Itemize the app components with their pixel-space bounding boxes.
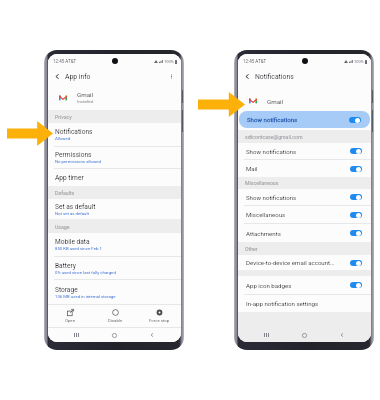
staticText: Mobile data: [55, 238, 90, 246]
staticText: Permissions: [55, 151, 92, 159]
staticText: 100%: [164, 59, 174, 64]
staticText: App info: [65, 73, 91, 81]
staticText: Storage: [55, 286, 78, 294]
button[interactable]: Back: [323, 328, 361, 342]
button[interactable]: App timer: [48, 169, 181, 186]
button[interactable]: In-app notification settings: [238, 295, 371, 312]
staticText: Other: [245, 246, 258, 252]
button[interactable]: Home: [285, 328, 323, 342]
staticText: Device-to-device email account…: [246, 259, 335, 266]
staticText: Allowed: [55, 136, 71, 141]
button[interactable]: Back: [133, 328, 171, 342]
button[interactable]: Show notifications: [238, 143, 371, 159]
button[interactable]: Show notifications: [239, 111, 370, 128]
button[interactable]: Back: [52, 72, 61, 81]
staticText: 12:45 AT&T: [243, 59, 267, 64]
staticText: 0% used since last fully charged: [55, 270, 116, 275]
staticText: 850 KB used since Feb 1: [55, 246, 102, 251]
button[interactable]: Storage: [48, 280, 181, 304]
staticText: sdtcontcase@gmail.com: [245, 134, 303, 140]
staticText: Privacy: [55, 114, 72, 120]
staticText: Force stop: [149, 318, 170, 323]
button[interactable]: Attachments: [238, 224, 371, 242]
button[interactable]: Miscellaneous: [238, 206, 371, 223]
button[interactable]: Recents: [248, 328, 285, 342]
staticText: Attachments: [246, 230, 281, 237]
button[interactable]: Back: [242, 72, 251, 81]
staticText: Show notifications: [246, 194, 297, 201]
staticText: 100%: [354, 59, 364, 64]
staticText: 12:45 AT&T: [53, 59, 77, 64]
button[interactable]: Device-to-device email account…: [238, 255, 371, 270]
staticText: Mail: [246, 165, 258, 172]
staticText: In-app notification settings: [246, 300, 319, 307]
staticText: Disable: [108, 318, 123, 323]
staticText: App timer: [55, 174, 84, 182]
staticText: Installed: [77, 99, 94, 104]
staticText: Set as default: [55, 203, 96, 211]
button[interactable]: Show notifications: [238, 189, 371, 205]
staticText: App icon badges: [246, 282, 292, 289]
button[interactable]: Mobile data: [48, 233, 181, 256]
staticText: Usage: [55, 224, 70, 230]
button[interactable]: Permissions: [48, 147, 181, 168]
staticText: 136 MB used in internal storage: [55, 294, 116, 299]
staticText: Defaults: [55, 190, 75, 196]
staticText: Battery: [55, 262, 76, 270]
staticText: Show notifications: [247, 116, 298, 123]
staticText: Open: [65, 318, 76, 323]
button[interactable]: Mail: [238, 160, 371, 177]
button[interactable]: Home: [95, 328, 133, 342]
staticText: Miscellaneous: [246, 211, 286, 218]
button[interactable]: Battery: [48, 257, 181, 279]
button[interactable]: Force stop: [137, 305, 181, 327]
button[interactable]: Set as default: [48, 199, 181, 219]
staticText: Gmail: [77, 91, 94, 98]
staticText: No permissions allowed: [55, 159, 101, 164]
staticText: Notifications: [55, 128, 93, 136]
button[interactable]: Notifications: [48, 123, 181, 146]
button[interactable]: Disable: [93, 305, 137, 327]
button[interactable]: Recents: [58, 328, 95, 342]
button[interactable]: More options: [167, 72, 176, 81]
staticText: Notifications: [255, 73, 294, 81]
button[interactable]: Open: [48, 305, 93, 327]
button[interactable]: App icon badges: [238, 276, 371, 294]
staticText: Show notifications: [246, 148, 297, 155]
staticText: Miscellaneous: [245, 180, 279, 186]
staticText: Not set as default: [55, 211, 89, 216]
staticText: Gmail: [267, 98, 284, 105]
